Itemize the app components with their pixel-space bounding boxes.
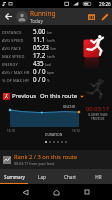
staticText: MAX SPEED bbox=[2, 54, 25, 59]
staticText: 0 / 0 bbox=[33, 75, 46, 83]
staticText: 11.1 bbox=[33, 35, 46, 43]
staticText: AVG SPEED bbox=[2, 38, 24, 43]
staticText: 00:27:01 bbox=[63, 105, 76, 109]
staticText: kcal bbox=[45, 62, 52, 66]
staticText: Rank 2 / 3 on this route bbox=[14, 153, 78, 161]
staticText: 16.12 bbox=[72, 129, 80, 133]
staticText: % OF MAX HR bbox=[2, 78, 29, 83]
staticText: DURATION bbox=[45, 132, 63, 137]
button[interactable]: Edit bbox=[98, 8, 111, 25]
staticText: km bbox=[47, 30, 52, 34]
button[interactable]: Summary bbox=[0, 169, 28, 184]
staticText: 05:23 bbox=[33, 43, 49, 51]
staticText: 00:03:17 bbox=[86, 105, 110, 113]
staticText: Summary bbox=[4, 174, 25, 180]
staticText: ENERGY bbox=[2, 62, 18, 67]
staticText: 5.00 bbox=[33, 27, 46, 35]
staticText: On this route bbox=[40, 92, 78, 100]
button[interactable]: Rank 2 / 3 on this route bbox=[0, 150, 112, 169]
staticText: SLOWER THAN bbox=[88, 113, 108, 117]
staticText: bpm bbox=[47, 70, 55, 74]
staticText: 0 / 0 bbox=[33, 67, 46, 75]
button[interactable]: On this route bbox=[40, 92, 84, 100]
staticText: % bbox=[47, 78, 50, 82]
staticText: Lap bbox=[38, 174, 46, 180]
staticText: 16.10 bbox=[7, 129, 15, 133]
staticText: 20:26 bbox=[99, 1, 111, 7]
staticText: 435 bbox=[33, 59, 44, 67]
button[interactable]: Lap bbox=[28, 169, 56, 184]
staticText: Chart bbox=[64, 174, 76, 180]
staticText: HR bbox=[95, 174, 102, 180]
staticText: /km bbox=[50, 46, 57, 50]
staticText: km/h bbox=[47, 54, 56, 58]
staticText: AVG / MAX HR bbox=[2, 70, 30, 75]
staticText: 00:03:17 from your best bbox=[14, 161, 55, 166]
button[interactable]: HR bbox=[84, 169, 112, 184]
staticText: 17.2 bbox=[33, 51, 46, 59]
staticText: Today bbox=[30, 18, 43, 24]
button[interactable]: Back bbox=[0, 8, 16, 25]
staticText: Previous bbox=[12, 92, 37, 100]
button[interactable]: Recents bbox=[79, 184, 95, 200]
button[interactable]: Home bbox=[48, 184, 64, 200]
staticText: AVG PACE bbox=[2, 46, 21, 51]
staticText: km/h bbox=[47, 38, 56, 42]
staticText: Running bbox=[30, 9, 56, 18]
button[interactable]: Sessions bbox=[85, 8, 98, 25]
staticText: DISTANCE bbox=[2, 30, 22, 35]
button[interactable]: Back bbox=[17, 184, 33, 200]
button[interactable]: Chart bbox=[56, 169, 84, 184]
staticText: PREVIOUS bbox=[91, 117, 105, 121]
